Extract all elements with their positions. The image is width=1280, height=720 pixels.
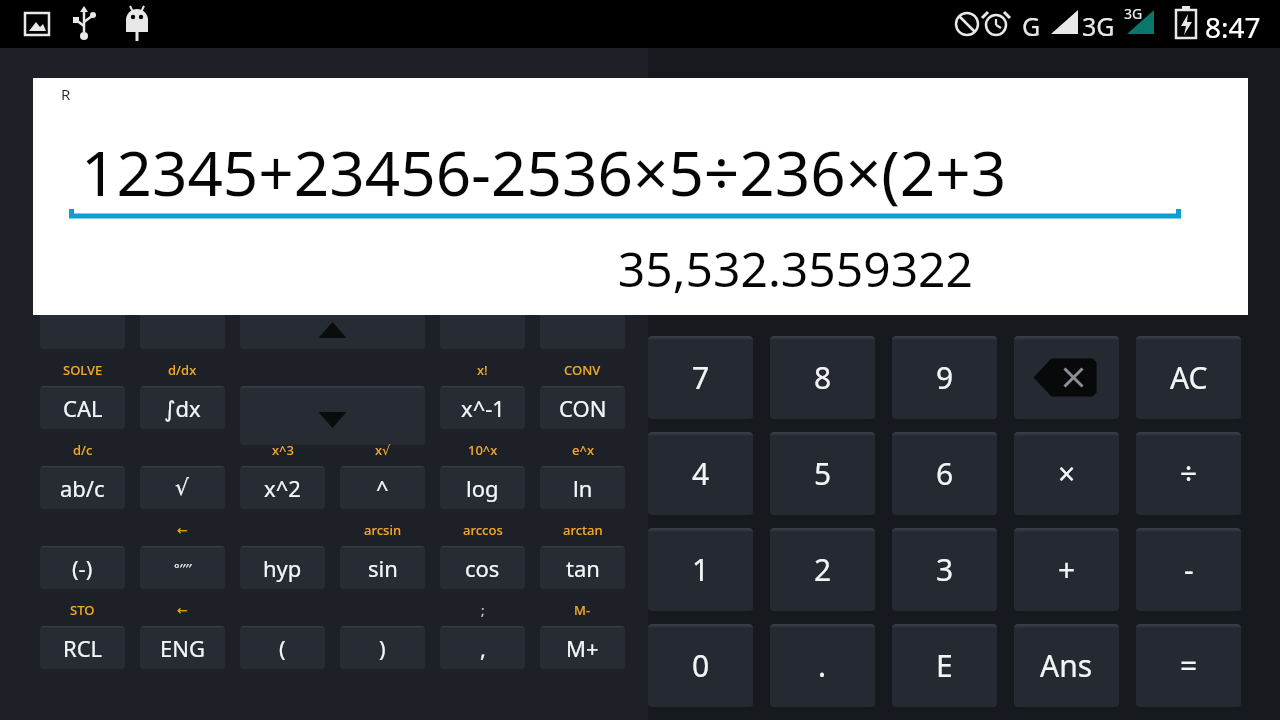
- staticText: ENG: [160, 633, 205, 663]
- staticText: =: [1180, 645, 1198, 686]
- staticText: 35,532.3559322: [617, 236, 973, 301]
- button[interactable]: x^-1: [440, 386, 525, 429]
- button[interactable]: 8: [770, 336, 875, 419]
- staticText: .: [818, 645, 827, 686]
- button[interactable]: 1: [648, 528, 753, 611]
- button[interactable]: 4: [648, 432, 753, 515]
- staticText: d/dx: [168, 361, 197, 379]
- button[interactable]: (: [240, 626, 325, 669]
- staticText: RCL: [63, 633, 103, 663]
- button[interactable]: ÷: [1136, 432, 1241, 515]
- staticText: ∫dx: [164, 393, 201, 423]
- button[interactable]: tan: [540, 546, 625, 589]
- button[interactable]: [540, 306, 625, 349]
- button[interactable]: 7: [648, 336, 753, 419]
- button[interactable]: log: [440, 466, 525, 509]
- button[interactable]: ENG: [140, 626, 225, 669]
- button[interactable]: ^: [340, 466, 425, 509]
- staticText: cos: [465, 553, 500, 583]
- staticText: x^3: [272, 441, 294, 459]
- button[interactable]: Down: [240, 386, 425, 445]
- staticText: ←: [177, 523, 188, 538]
- staticText: ←: [177, 603, 188, 618]
- staticText: 3G: [1124, 4, 1143, 23]
- staticText: ln: [573, 473, 593, 503]
- button[interactable]: 9: [892, 336, 997, 419]
- staticText: AC: [1170, 357, 1208, 398]
- button[interactable]: AC: [1136, 336, 1241, 419]
- staticText: M-: [574, 601, 591, 619]
- staticText: √: [175, 475, 190, 501]
- button[interactable]: CAL: [40, 386, 125, 429]
- staticText: x!: [477, 361, 488, 379]
- button[interactable]: -: [1136, 528, 1241, 611]
- staticText: (-): [72, 553, 93, 583]
- button[interactable]: .: [770, 624, 875, 707]
- staticText: M+: [566, 633, 599, 663]
- staticText: hyp: [263, 553, 302, 583]
- staticText: 3: [936, 549, 954, 590]
- button[interactable]: [140, 306, 225, 349]
- button[interactable]: hyp: [240, 546, 325, 589]
- button[interactable]: ×: [1014, 432, 1119, 515]
- button[interactable]: °′′′′: [140, 546, 225, 589]
- button[interactable]: ab/c: [40, 466, 125, 509]
- button[interactable]: cos: [440, 546, 525, 589]
- staticText: ab/c: [60, 473, 105, 503]
- button[interactable]: M+: [540, 626, 625, 669]
- staticText: 4: [692, 453, 710, 494]
- button[interactable]: =: [1136, 624, 1241, 707]
- staticText: 0: [692, 645, 710, 686]
- staticText: x^2: [264, 473, 301, 503]
- button[interactable]: Up: [240, 306, 425, 349]
- button[interactable]: [440, 306, 525, 349]
- staticText: ×: [1058, 453, 1076, 494]
- staticText: tan: [566, 553, 600, 583]
- staticText: x√: [375, 441, 391, 459]
- button[interactable]: ln: [540, 466, 625, 509]
- staticText: °′′′′: [174, 559, 192, 577]
- staticText: 3G: [1082, 9, 1115, 43]
- staticText: CONV: [564, 361, 601, 379]
- staticText: E: [936, 645, 953, 686]
- staticText: ;: [481, 601, 485, 619]
- button[interactable]: 2: [770, 528, 875, 611]
- button[interactable]: Ans: [1014, 624, 1119, 707]
- staticText: ): [379, 633, 386, 663]
- button[interactable]: CON: [540, 386, 625, 429]
- staticText: ^: [376, 473, 389, 503]
- button[interactable]: E: [892, 624, 997, 707]
- staticText: +: [1058, 549, 1076, 590]
- button[interactable]: ∫dx: [140, 386, 225, 429]
- staticText: CON: [559, 393, 607, 423]
- button[interactable]: x^2: [240, 466, 325, 509]
- button[interactable]: Backspace: [1014, 336, 1119, 419]
- button[interactable]: ,: [440, 626, 525, 669]
- button[interactable]: 3: [892, 528, 997, 611]
- button[interactable]: (-): [40, 546, 125, 589]
- button[interactable]: [40, 306, 125, 349]
- staticText: G: [1022, 9, 1041, 43]
- staticText: 10^x: [468, 441, 498, 459]
- staticText: d/c: [73, 441, 93, 459]
- staticText: CAL: [63, 393, 103, 423]
- button[interactable]: ): [340, 626, 425, 669]
- button[interactable]: 5: [770, 432, 875, 515]
- staticText: R: [61, 84, 71, 104]
- staticText: Ans: [1040, 645, 1093, 686]
- staticText: 2: [814, 549, 832, 590]
- button[interactable]: RCL: [40, 626, 125, 669]
- button[interactable]: √: [140, 466, 225, 509]
- button[interactable]: 6: [892, 432, 997, 515]
- staticText: -: [1184, 549, 1194, 590]
- staticText: 5: [814, 453, 832, 494]
- staticText: 8: [814, 357, 832, 398]
- staticText: 7: [692, 357, 710, 398]
- button[interactable]: +: [1014, 528, 1119, 611]
- staticText: 12345+23456-2536×5÷236×(2+3: [81, 130, 1007, 214]
- staticText: arcsin: [364, 521, 402, 539]
- staticText: (: [279, 633, 286, 663]
- staticText: 1: [692, 549, 710, 590]
- button[interactable]: sin: [340, 546, 425, 589]
- button[interactable]: 0: [648, 624, 753, 707]
